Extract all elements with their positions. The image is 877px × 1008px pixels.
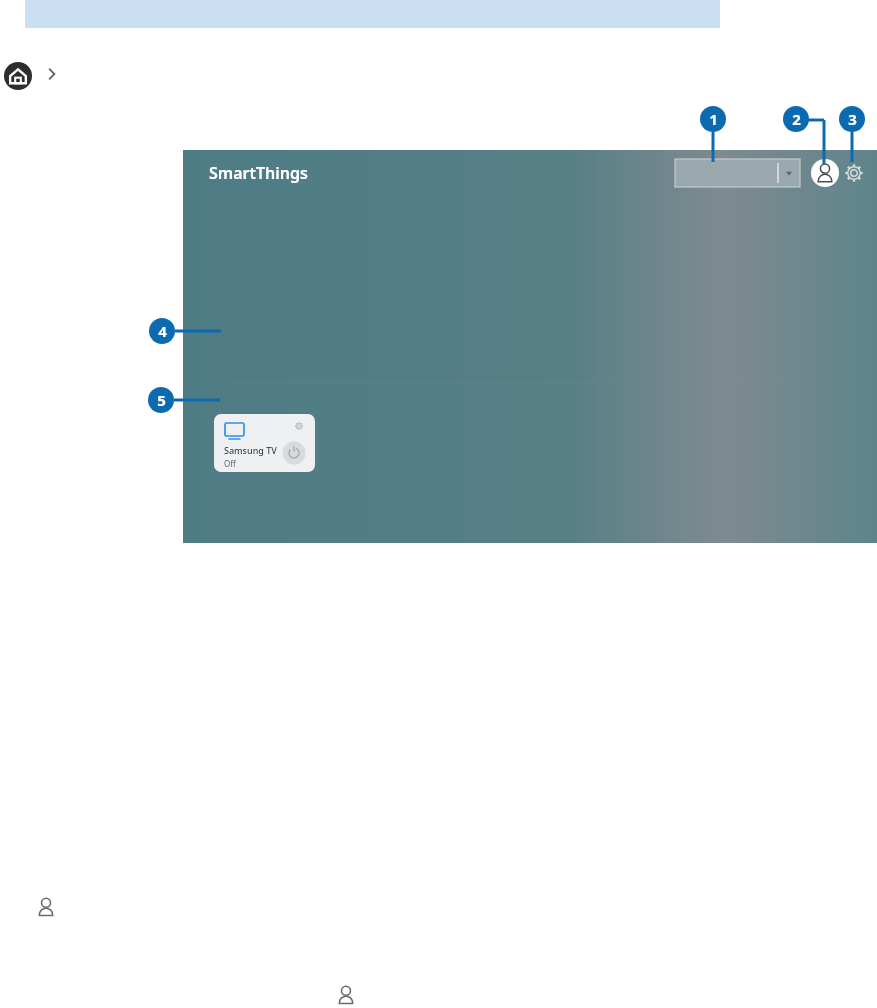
button[interactable]: Settings bbox=[841, 160, 867, 186]
staticText: 1 bbox=[709, 109, 718, 129]
button[interactable] bbox=[675, 159, 800, 187]
button[interactable] bbox=[40, 62, 64, 86]
staticText: 2 bbox=[792, 109, 801, 129]
staticText: SmartThings bbox=[209, 162, 308, 184]
button[interactable]: Account bbox=[333, 982, 359, 1008]
staticText: 5 bbox=[157, 390, 166, 410]
staticText: 4 bbox=[158, 321, 167, 341]
staticText: Samsung TV bbox=[224, 444, 277, 456]
button[interactable]: Account bbox=[811, 159, 839, 187]
staticText: Off bbox=[224, 458, 236, 469]
staticText: 3 bbox=[848, 109, 857, 129]
button[interactable]: Samsung TV bbox=[214, 414, 315, 472]
button[interactable]: Account bbox=[33, 894, 59, 920]
button[interactable]: Home bbox=[4, 62, 32, 90]
